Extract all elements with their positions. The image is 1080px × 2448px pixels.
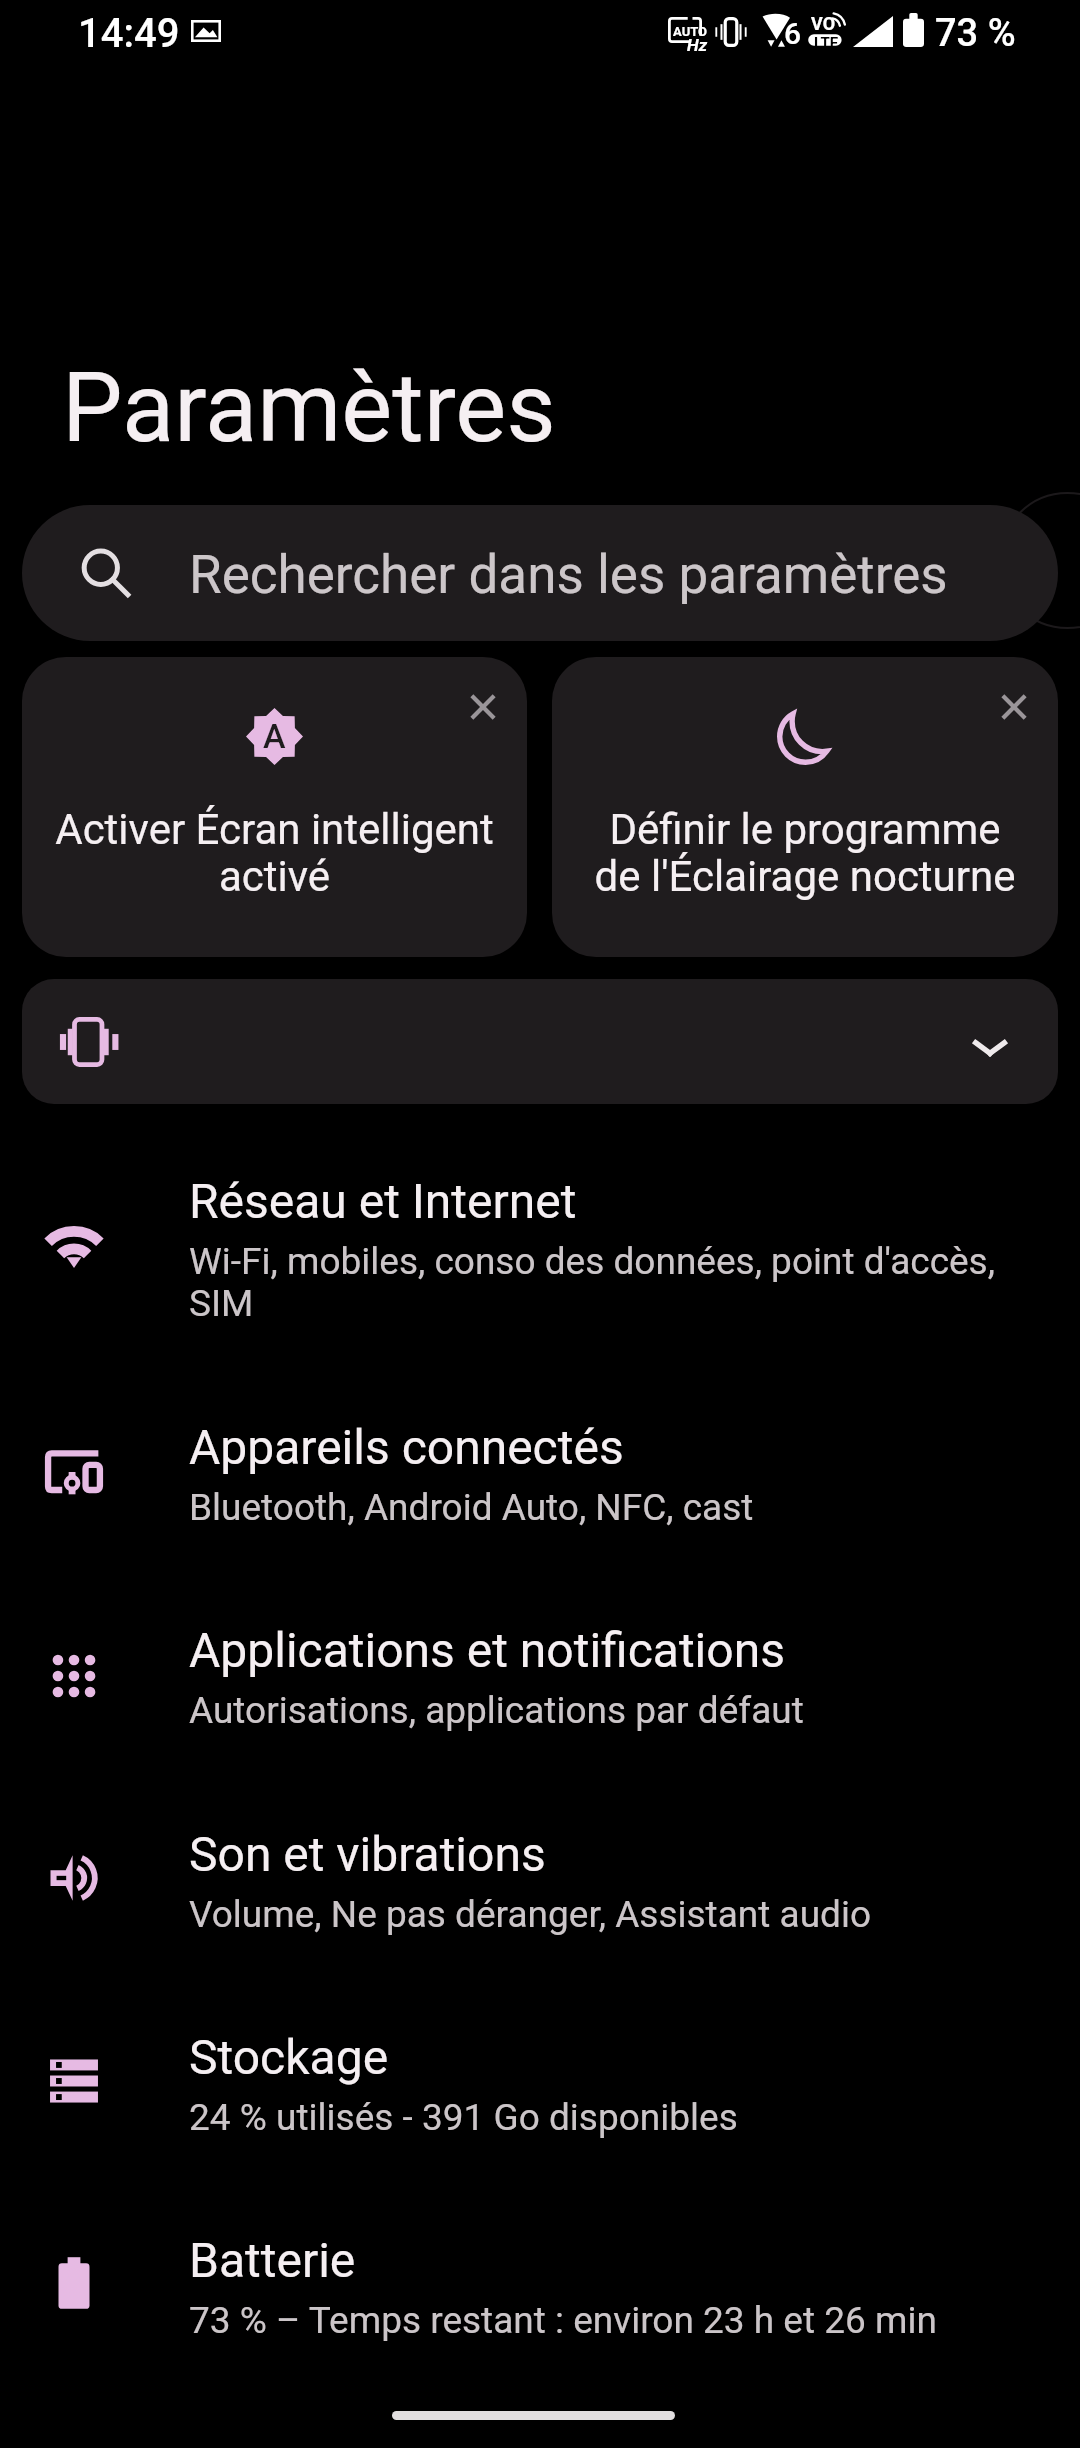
button[interactable]: Applications et notifications	[0, 1600, 1080, 1762]
button[interactable]: Son et vibrations	[0, 1804, 1080, 1966]
button[interactable]: Développer	[22, 979, 1058, 1104]
staticText: Son et vibrations	[189, 1826, 546, 1882]
staticText: AUTO	[673, 24, 708, 39]
button[interactable]: Fermer	[552, 657, 1058, 957]
button[interactable]: Fermer	[991, 684, 1037, 730]
staticText: Réseau et Internet	[189, 1173, 577, 1229]
staticText: Définir le programme de l'Éclairage noct…	[556, 805, 1054, 901]
staticText: 24 % utilisés - 391 Go disponibles	[189, 2096, 738, 2139]
staticText: Autorisations, applications par défaut	[189, 1689, 804, 1732]
staticText: 14:49	[78, 10, 180, 57]
other: Wi-Fi	[762, 14, 790, 46]
staticText: Rechercher dans les paramètres	[189, 544, 948, 606]
staticText: Applications et notifications	[189, 1622, 785, 1678]
staticText: Hz	[687, 35, 708, 55]
button[interactable]: Réseau et Internet	[0, 1151, 1080, 1355]
button[interactable]: Stockage	[0, 2007, 1080, 2169]
staticText: Activer Écran intelligent activé	[26, 805, 523, 901]
staticText: Stockage	[189, 2029, 389, 2085]
other: Batterie	[903, 13, 924, 47]
other: Rechercher	[80, 548, 132, 600]
staticText: Wi-Fi, mobiles, conso des données, point…	[189, 1240, 1001, 1325]
staticText: A	[263, 716, 286, 756]
button[interactable]: Appareils connectés	[0, 1397, 1080, 1559]
button[interactable]: Développer	[968, 1026, 1012, 1070]
staticText: LTE	[814, 34, 839, 52]
button[interactable]: A	[22, 657, 527, 957]
staticText: VO	[811, 13, 836, 34]
button[interactable]: Batterie	[0, 2210, 1080, 2372]
staticText: Bluetooth, Android Auto, NFC, cast	[189, 1486, 754, 1529]
other: Signal	[853, 16, 893, 47]
button[interactable]: Rechercher	[22, 505, 1058, 641]
button[interactable]: Fermer	[460, 684, 506, 730]
staticText: Paramètres	[62, 352, 556, 465]
staticText: Volume, Ne pas déranger, Assistant audio	[189, 1893, 872, 1936]
staticText: 73 % – Temps restant : environ 23 h et 2…	[189, 2299, 937, 2342]
staticText: Batterie	[189, 2232, 356, 2288]
button[interactable]: Compte Google	[999, 492, 1080, 629]
staticText: 73 %	[935, 11, 1016, 56]
staticText: Appareils connectés	[189, 1419, 624, 1475]
other: Capture d'écran	[191, 20, 221, 42]
staticText: 6	[784, 16, 802, 51]
